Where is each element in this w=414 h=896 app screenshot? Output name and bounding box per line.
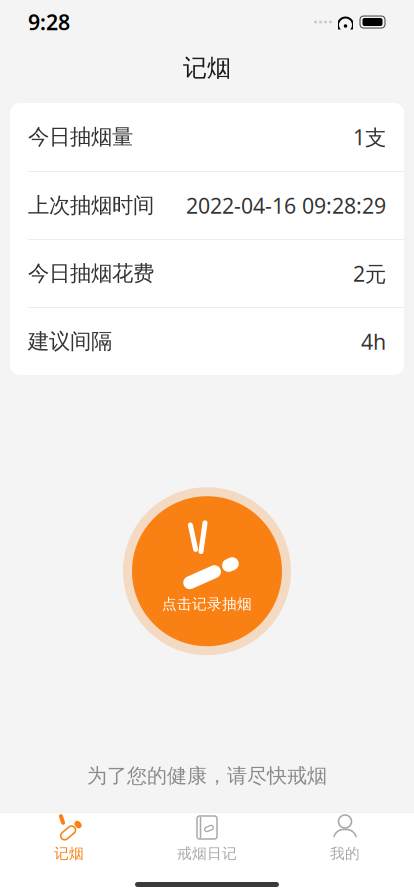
staticText: 今日抽烟花费 xyxy=(28,260,154,287)
staticText: 建议间隔 xyxy=(28,328,112,355)
staticText: 2元 xyxy=(353,259,386,288)
button[interactable]: 点击记录抽烟 xyxy=(122,486,292,656)
staticText: 2022-04-16 09:28:29 xyxy=(186,191,386,220)
staticText: 为了您的健康，请尽快戒烟 xyxy=(87,763,327,788)
button[interactable]: 我的 xyxy=(276,812,414,864)
staticText: 我的 xyxy=(330,844,360,862)
button[interactable]: 记烟 xyxy=(0,812,138,864)
staticText: 4h xyxy=(361,327,386,356)
staticText: 9:28 xyxy=(28,8,70,36)
button[interactable]: 戒烟日记 xyxy=(138,812,276,864)
staticText: 点击记录抽烟 xyxy=(162,595,252,613)
staticText: 1支 xyxy=(353,123,386,151)
staticText: 记烟 xyxy=(183,53,231,83)
staticText: 今日抽烟量 xyxy=(28,124,133,150)
staticText: 记烟 xyxy=(54,844,84,862)
staticText: 上次抽烟时间 xyxy=(28,192,154,219)
staticText: 戒烟日记 xyxy=(177,844,237,862)
